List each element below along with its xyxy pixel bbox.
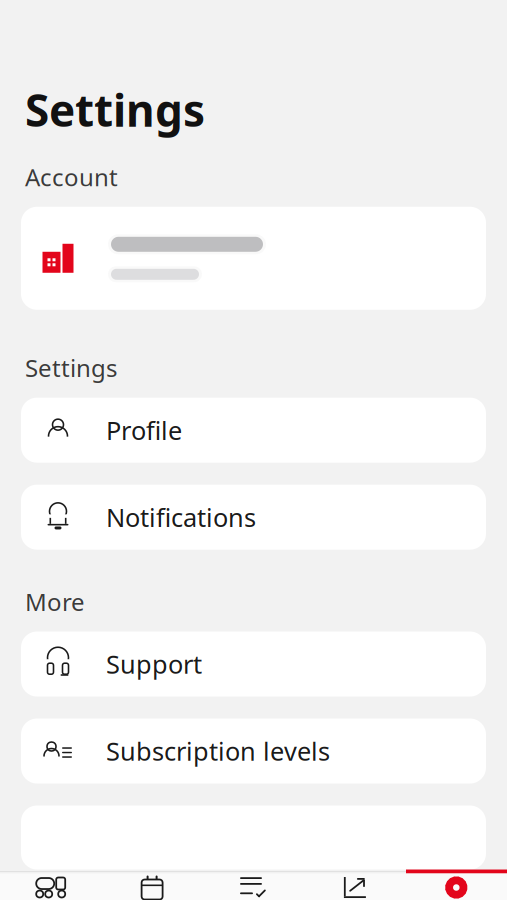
button[interactable]: Delivered	[203, 873, 304, 900]
staticText: Notifications	[106, 500, 256, 534]
button[interactable]: Planned	[101, 873, 203, 900]
staticText: Subscription levels	[106, 734, 330, 768]
staticText: More	[25, 586, 85, 618]
staticText: Profile	[106, 413, 182, 447]
staticText: Account	[25, 161, 118, 193]
staticText: Support	[106, 647, 202, 681]
staticText: Settings	[25, 80, 205, 139]
button[interactable]: Profile	[21, 398, 486, 463]
button[interactable]: Ongoing	[0, 873, 101, 900]
button[interactable]: Subscription levels	[21, 718, 486, 783]
button[interactable]	[21, 207, 486, 310]
staticText: Settings	[25, 352, 117, 384]
button[interactable]: Maturity	[304, 873, 406, 900]
button[interactable]: Settings	[406, 873, 507, 900]
button[interactable]: Support	[21, 631, 486, 696]
button[interactable]	[21, 805, 486, 869]
button[interactable]: Notifications	[21, 485, 486, 550]
